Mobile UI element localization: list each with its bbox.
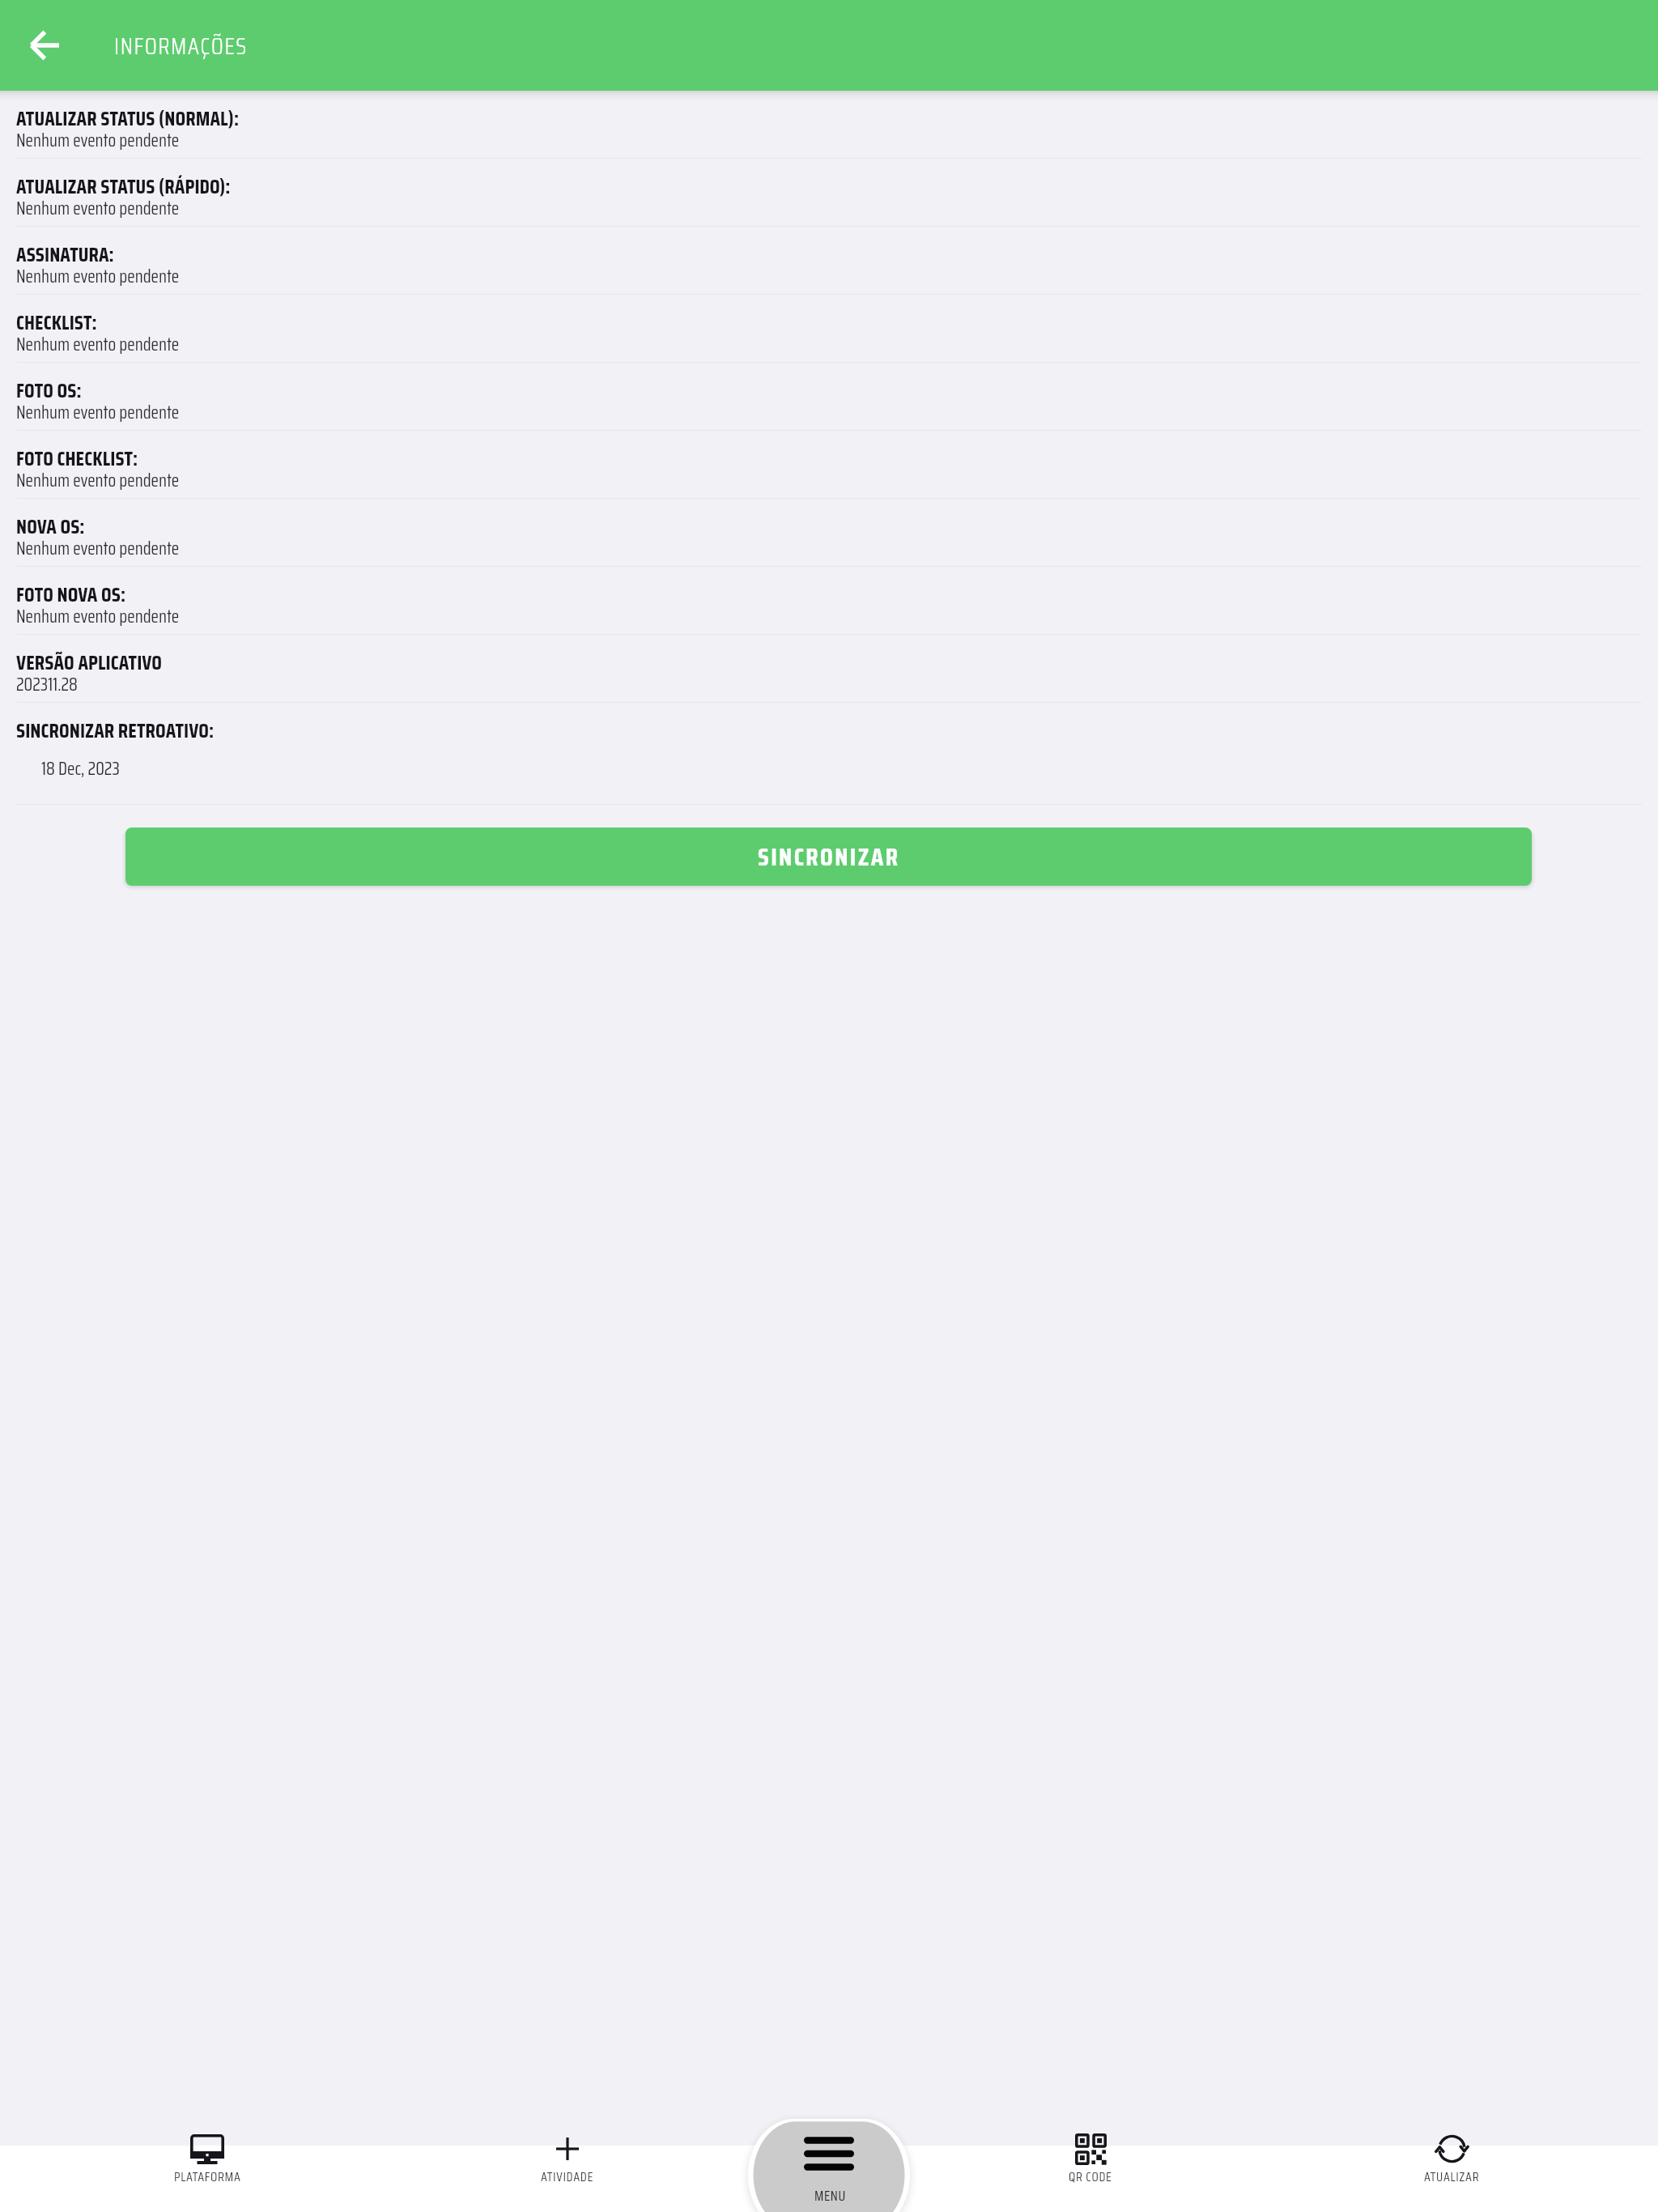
staticText: PLATAFORMA xyxy=(174,2167,241,2187)
staticText: 18 Dec, 2023 xyxy=(41,755,120,783)
button[interactable]: Back xyxy=(23,23,66,67)
button[interactable]: FOTO NOVA OS: xyxy=(0,567,1658,635)
button[interactable]: QR CODE xyxy=(1001,2131,1180,2197)
staticText: INFORMAÇÕES xyxy=(114,28,248,65)
button[interactable]: ATUALIZAR STATUS (RÁPIDO): xyxy=(0,159,1658,227)
button[interactable]: ATIVIDADE xyxy=(478,2131,657,2197)
button[interactable]: CHECKLIST: xyxy=(0,295,1658,363)
button[interactable]: VERSÃO APLICATIVO xyxy=(0,635,1658,703)
staticText: SINCRONIZAR RETROATIVO: xyxy=(16,715,215,747)
staticText: FOTO CHECKLIST: xyxy=(16,443,138,474)
staticText: ATIVIDADE xyxy=(541,2167,594,2187)
staticText: Nenhum evento pendente xyxy=(16,466,180,495)
button[interactable]: ATUALIZAR xyxy=(1363,2131,1541,2197)
staticText: Nenhum evento pendente xyxy=(16,330,180,359)
staticText: SINCRONIZAR xyxy=(758,837,900,877)
staticText: Nenhum evento pendente xyxy=(16,262,180,291)
button[interactable]: FOTO CHECKLIST: xyxy=(0,431,1658,499)
button[interactable]: SINCRONIZAR xyxy=(125,827,1532,886)
staticText: Nenhum evento pendente xyxy=(16,602,180,631)
staticText: ATUALIZAR STATUS (NORMAL): xyxy=(16,103,240,134)
button[interactable]: SINCRONIZAR RETROATIVO: xyxy=(0,703,1658,805)
staticText: Nenhum evento pendente xyxy=(16,398,180,427)
staticText: Nenhum evento pendente xyxy=(16,126,180,155)
staticText: Nenhum evento pendente xyxy=(16,194,180,223)
staticText: ATUALIZAR xyxy=(1424,2167,1480,2187)
staticText: NOVA OS: xyxy=(16,511,85,542)
button[interactable]: ASSINATURA: xyxy=(0,227,1658,295)
staticText: FOTO OS: xyxy=(16,375,82,406)
staticText: QR CODE xyxy=(1069,2167,1112,2187)
staticText: ASSINATURA: xyxy=(16,239,114,270)
button[interactable]: PLATAFORMA xyxy=(118,2131,296,2197)
staticText: ATUALIZAR STATUS (RÁPIDO): xyxy=(16,171,231,202)
button[interactable]: FOTO OS: xyxy=(0,363,1658,431)
staticText: 202311.28 xyxy=(16,670,78,699)
button[interactable]: ATUALIZAR STATUS (NORMAL): xyxy=(0,91,1658,159)
staticText: FOTO NOVA OS: xyxy=(16,579,126,610)
staticText: CHECKLIST: xyxy=(16,307,97,338)
staticText: Nenhum evento pendente xyxy=(16,534,180,563)
button[interactable]: Menu xyxy=(751,2121,907,2208)
staticText: VERSÃO APLICATIVO xyxy=(16,647,163,678)
button[interactable]: NOVA OS: xyxy=(0,499,1658,567)
staticText: MENU xyxy=(814,2185,846,2207)
